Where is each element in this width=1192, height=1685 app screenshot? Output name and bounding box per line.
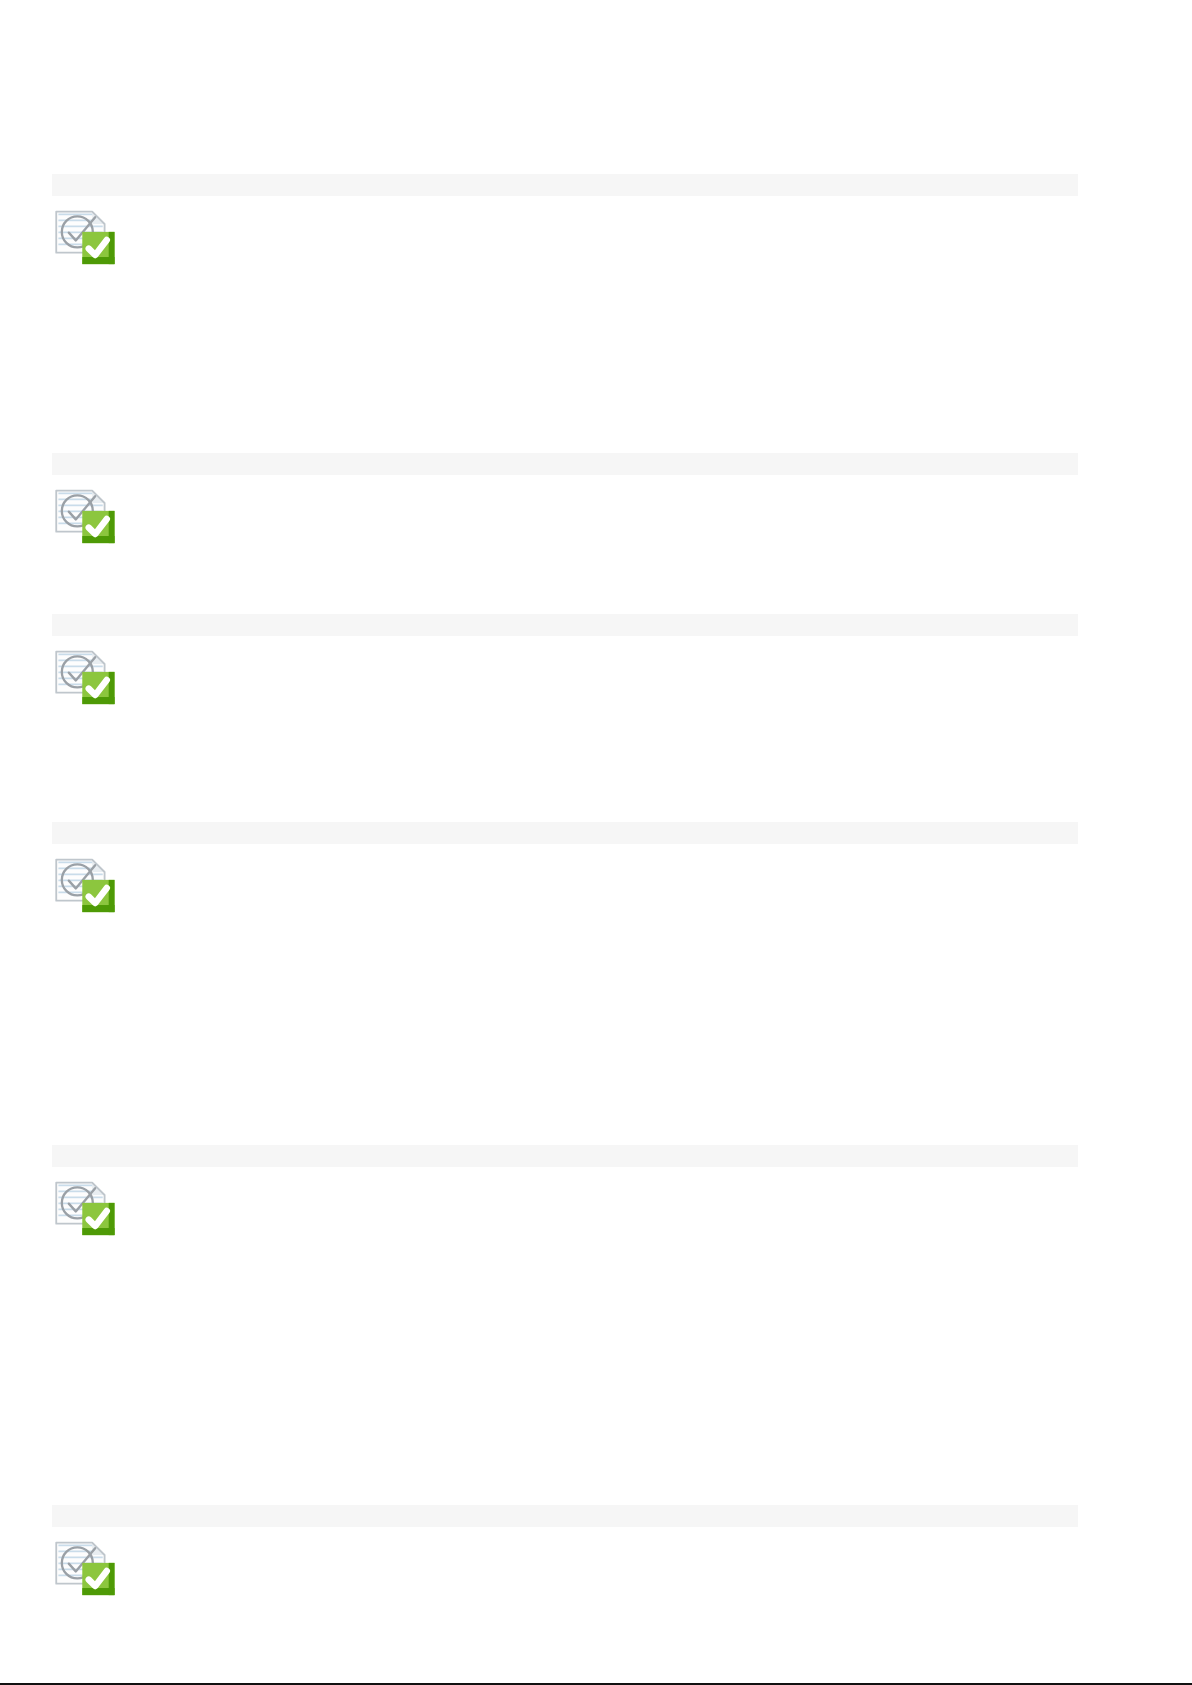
button[interactable]: Completed document [55, 488, 117, 540]
button[interactable]: Completed document [55, 649, 117, 701]
button[interactable]: Completed document [55, 1180, 117, 1232]
button[interactable]: Completed document [55, 857, 117, 909]
button[interactable]: Completed document [55, 1540, 117, 1592]
button[interactable]: Completed document [55, 209, 117, 261]
